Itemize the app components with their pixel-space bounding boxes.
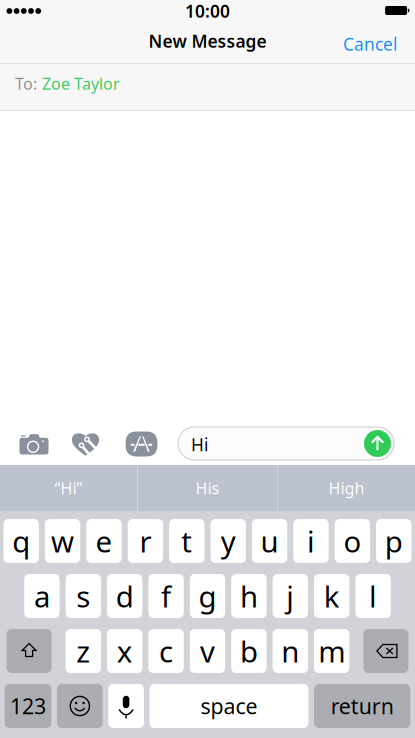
button[interactable]: App Store [113,419,170,463]
button[interactable]: y [210,519,246,563]
staticText: d [116,576,134,615]
staticText: Zoe Taylor [42,73,120,94]
button[interactable]: g [190,574,225,618]
staticText: u [261,521,279,560]
button[interactable]: w [45,519,80,563]
button[interactable]: Shift [7,629,52,673]
staticText: b [240,631,258,670]
staticText: Cancel [343,32,397,55]
button[interactable]: q [3,519,39,563]
button[interactable]: Dictation [108,684,144,728]
button[interactable]: m [314,629,349,673]
button[interactable]: u [252,519,287,563]
button[interactable]: s [66,574,101,618]
staticText: His [195,477,219,499]
button[interactable]: His [138,465,277,511]
staticText: n [281,631,299,670]
staticText: z [76,631,90,670]
button[interactable]: c [148,629,184,673]
staticText: q [12,521,30,560]
button[interactable]: High [278,465,415,511]
staticText: m [318,631,345,670]
staticText: s [76,576,90,615]
button[interactable]: b [231,629,267,673]
staticText: v [200,631,215,670]
button[interactable]: z [66,629,101,673]
staticText: o [343,521,361,560]
staticText: Hi [191,433,208,456]
button[interactable]: f [148,574,184,618]
button[interactable]: o [335,519,370,563]
staticText: j [286,576,294,615]
staticText: g [198,576,216,615]
staticText: i [307,521,315,560]
staticText: x [117,631,133,670]
staticText: p [385,521,403,560]
button[interactable]: k [314,574,349,618]
staticText: l [369,576,377,615]
button[interactable]: Digital Touch [58,419,113,463]
button[interactable]: a [24,574,60,618]
staticText: t [181,521,192,560]
staticText: space [200,692,257,720]
staticText: c [159,631,173,670]
button[interactable]: x [107,629,142,673]
button[interactable]: “Hi” [0,465,137,511]
button[interactable]: n [273,629,308,673]
button[interactable]: Cancel [325,25,415,62]
staticText: a [34,576,50,615]
button[interactable]: d [107,574,142,618]
staticText: High [328,477,364,499]
button[interactable]: return [314,684,410,728]
staticText: k [324,576,340,615]
staticText: To: [15,73,37,94]
staticText: “Hi” [54,477,82,499]
button[interactable]: Send [364,430,391,457]
staticText: 123 [10,692,46,720]
button[interactable]: j [273,574,308,618]
staticText: return [331,692,394,720]
button[interactable]: t [169,519,204,563]
button[interactable]: l [355,574,391,618]
staticText: y [221,521,236,560]
button[interactable]: 123 [5,684,51,728]
staticText: f [161,576,171,615]
button[interactable]: i [293,519,329,563]
button[interactable]: h [231,574,267,618]
button[interactable]: e [86,519,122,563]
staticText: 10:00 [185,0,230,22]
button[interactable]: v [190,629,225,673]
button[interactable]: Delete [363,629,408,673]
button[interactable]: Emoji [57,684,103,728]
staticText: w [51,521,74,560]
button[interactable]: Camera [10,419,58,463]
staticText: h [240,576,258,615]
staticText: e [95,521,112,560]
button[interactable]: space [149,684,308,728]
staticText: New Message [148,29,266,52]
button[interactable]: p [376,519,411,563]
staticText: r [139,521,151,560]
button[interactable]: r [128,519,163,563]
